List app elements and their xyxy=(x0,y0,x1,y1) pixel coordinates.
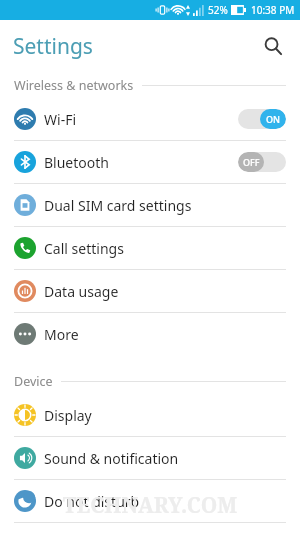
staticText: Settings xyxy=(13,32,93,61)
staticText: Data usage xyxy=(44,282,119,301)
staticText: Sound & notification xyxy=(44,449,179,468)
staticText: Device xyxy=(14,373,53,390)
staticText: Wi-Fi xyxy=(44,110,77,129)
button[interactable]: Call settings xyxy=(0,227,300,269)
button[interactable]: Wi-Fi xyxy=(0,98,300,140)
staticText: Do not disturb xyxy=(44,492,140,511)
button[interactable]: Turn on xyxy=(238,152,286,172)
staticText: Display xyxy=(44,406,92,425)
button[interactable]: Sound & notification xyxy=(0,437,300,479)
staticText: TECHNARY.COM xyxy=(0,491,300,520)
button[interactable]: Bluetooth xyxy=(0,141,300,183)
button[interactable]: Do not disturb xyxy=(0,480,300,522)
button[interactable]: Search xyxy=(254,27,292,65)
button[interactable]: Dual SIM card settings xyxy=(0,184,300,226)
staticText: 10:38 PM xyxy=(251,3,295,17)
staticText: ON xyxy=(266,113,281,125)
staticText: More xyxy=(44,325,79,344)
button[interactable]: Display xyxy=(0,394,300,436)
button[interactable]: Turn off xyxy=(238,109,286,129)
staticText: OFF xyxy=(243,156,260,168)
staticText: Dual SIM card settings xyxy=(44,196,192,215)
staticText: Bluetooth xyxy=(44,153,109,172)
staticText: Wireless & networks xyxy=(14,77,134,94)
staticText: Call settings xyxy=(44,239,124,258)
button[interactable]: More xyxy=(0,313,300,355)
button[interactable]: Data usage xyxy=(0,270,300,312)
staticText: 52% xyxy=(208,3,228,17)
